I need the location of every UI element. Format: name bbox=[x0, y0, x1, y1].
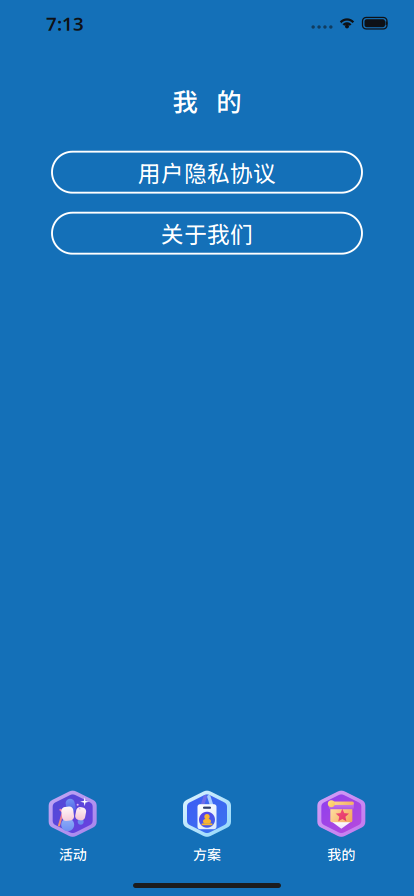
staticText: 方案 bbox=[193, 844, 221, 864]
staticText: 用户隐私协议 bbox=[138, 156, 276, 189]
staticText: 关于我们 bbox=[161, 217, 253, 250]
button[interactable]: 活动 bbox=[5, 790, 140, 864]
staticText: 我的 bbox=[327, 844, 355, 864]
staticText: 7:13 bbox=[46, 11, 84, 36]
staticText: 活动 bbox=[59, 844, 87, 864]
button[interactable]: 关于我们 bbox=[52, 213, 362, 254]
button[interactable]: 我的 bbox=[274, 790, 408, 864]
button[interactable]: 方案 bbox=[140, 790, 274, 864]
button[interactable]: 用户隐私协议 bbox=[52, 152, 362, 193]
staticText: 我 的 bbox=[172, 82, 241, 119]
